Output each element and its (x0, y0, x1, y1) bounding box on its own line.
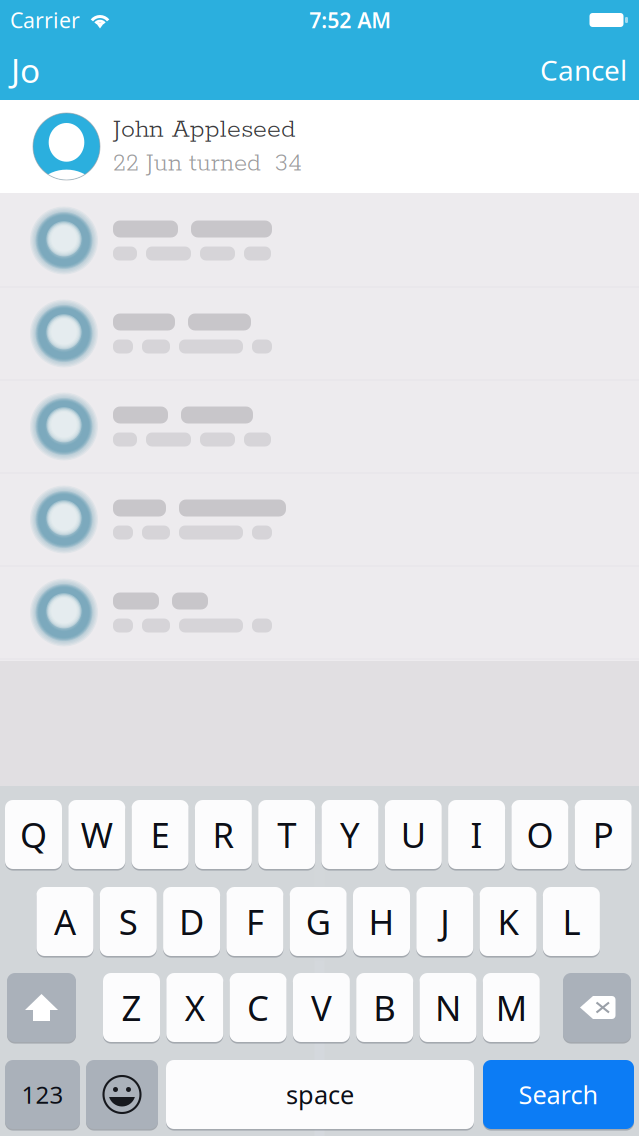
staticText: H (368, 898, 394, 944)
button[interactable]: Search (483, 1059, 634, 1130)
button[interactable]: X (166, 972, 223, 1043)
button[interactable]: Cancel (516, 39, 627, 101)
staticText: A (54, 898, 76, 944)
staticText: John Appleseed (113, 114, 296, 146)
button[interactable]: J (416, 886, 473, 957)
button[interactable]: 123 (5, 1059, 80, 1130)
staticText: R (212, 811, 234, 857)
staticText: P (593, 811, 614, 857)
staticText: M (496, 984, 527, 1030)
button[interactable]: S (100, 886, 157, 957)
staticText: D (179, 898, 204, 944)
staticText: Q (20, 811, 47, 857)
button[interactable]: H (353, 886, 410, 957)
staticText: G (306, 898, 331, 944)
button[interactable]: L (543, 886, 600, 957)
staticText: Search (518, 1078, 598, 1111)
staticText: Carrier (10, 6, 80, 34)
staticText: U (401, 811, 426, 857)
staticText: V (311, 984, 332, 1030)
staticText: N (435, 984, 461, 1030)
staticText: 123 (21, 1079, 63, 1110)
staticText: Y (340, 811, 360, 857)
button[interactable] (7, 972, 76, 1043)
button[interactable]: I (448, 799, 505, 870)
button[interactable]: John Appleseed (0, 100, 639, 193)
button[interactable] (563, 972, 631, 1043)
button[interactable]: Z (103, 972, 160, 1043)
button[interactable] (86, 1059, 158, 1130)
staticText: Z (121, 984, 141, 1030)
button[interactable]: M (483, 972, 540, 1043)
button[interactable]: B (356, 972, 413, 1043)
button[interactable]: C (230, 972, 287, 1043)
button[interactable]: N (419, 972, 476, 1043)
button[interactable]: F (226, 886, 283, 957)
staticText: 22 Jun turned 34 (113, 149, 302, 179)
staticText: T (277, 811, 296, 857)
staticText: K (498, 898, 519, 944)
button[interactable]: Q (5, 799, 62, 870)
button[interactable]: Y (321, 799, 378, 870)
button[interactable]: space (166, 1059, 474, 1130)
staticText: Cancel (540, 51, 627, 89)
staticText: Jo (11, 48, 40, 92)
button[interactable]: D (163, 886, 220, 957)
staticText: W (81, 811, 113, 857)
button[interactable]: O (511, 799, 568, 870)
button[interactable]: W (68, 799, 125, 870)
button[interactable]: U (385, 799, 442, 870)
button[interactable]: G (290, 886, 347, 957)
staticText: X (185, 984, 205, 1030)
button[interactable]: V (293, 972, 350, 1043)
staticText: B (373, 984, 396, 1030)
button[interactable]: K (480, 886, 537, 957)
button[interactable]: R (195, 799, 252, 870)
button[interactable]: T (258, 799, 315, 870)
button[interactable]: A (36, 886, 93, 957)
button[interactable]: E (132, 799, 189, 870)
button[interactable]: P (575, 799, 632, 870)
staticText: F (246, 898, 264, 944)
staticText: L (562, 898, 580, 944)
staticText: C (247, 984, 269, 1030)
staticText: O (526, 811, 553, 857)
staticText: I (471, 811, 483, 857)
staticText: E (151, 811, 170, 857)
staticText: space (286, 1078, 354, 1111)
staticText: 7:52 AM (309, 6, 391, 34)
staticText: S (119, 898, 138, 944)
staticText: J (440, 898, 449, 944)
